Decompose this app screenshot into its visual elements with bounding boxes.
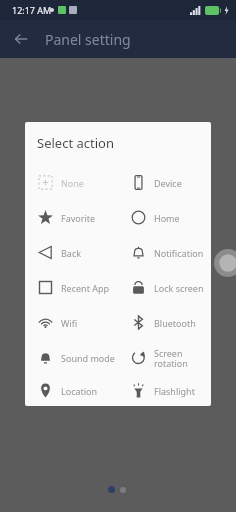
button[interactable]: Lock screen [118,270,211,305]
staticText: Device [154,177,182,189]
button[interactable]: Floating button [214,249,236,277]
button[interactable]: Back [9,27,33,51]
staticText: Lock screen [154,282,204,294]
staticText: Location [61,385,98,397]
button[interactable]: Location [25,375,118,406]
button[interactable]: Flashlight [118,375,211,406]
button[interactable]: Recent App [25,270,118,305]
button[interactable]: Favorite [25,200,118,235]
staticText: Back [61,247,82,259]
button[interactable]: Bluetooth [118,305,211,340]
staticText: Wifi [61,317,78,329]
staticText: Panel setting [45,30,131,49]
button[interactable]: Notification [118,235,211,270]
staticText: Favorite [61,212,96,224]
staticText: Notification [154,247,204,259]
button[interactable]: Wifi [25,305,118,340]
staticText: Flashlight [154,385,195,397]
staticText: Select action [37,134,114,152]
staticText: 12:17 AM [12,4,52,16]
staticText: Screen rotation [154,347,188,369]
button[interactable]: None [25,165,118,200]
button[interactable]: Sound mode [25,340,118,375]
staticText: Home [154,212,180,224]
staticText: Sound mode [61,352,115,364]
button[interactable]: Back [25,235,118,270]
button[interactable]: Screen rotation [118,340,211,375]
staticText: Bluetooth [154,317,196,329]
button[interactable]: Home [118,200,211,235]
staticText: Recent App [61,282,110,294]
staticText: None [61,177,84,189]
button[interactable]: Device [118,165,211,200]
